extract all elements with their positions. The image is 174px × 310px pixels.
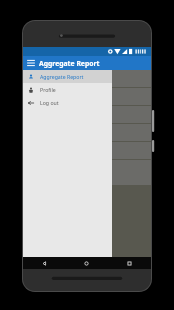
button[interactable]: Recent apps xyxy=(108,257,151,269)
button[interactable] xyxy=(23,142,151,159)
button[interactable]: Profile xyxy=(23,83,112,96)
button[interactable] xyxy=(23,88,151,105)
button[interactable]: Aggregate Report xyxy=(23,70,112,83)
button[interactable]: Home xyxy=(65,257,108,269)
button[interactable] xyxy=(23,124,151,141)
button[interactable]: Open navigation drawer xyxy=(23,56,39,70)
button[interactable] xyxy=(23,70,151,87)
staticText: Aggregate Report xyxy=(39,59,100,68)
button[interactable] xyxy=(23,106,151,123)
button[interactable]: Log out xyxy=(23,96,112,109)
staticText: Aggregate Report xyxy=(40,73,84,80)
button[interactable] xyxy=(23,160,151,185)
staticText: Profile xyxy=(40,86,56,93)
staticText: Log out xyxy=(40,99,59,106)
button[interactable]: Back xyxy=(23,257,65,269)
